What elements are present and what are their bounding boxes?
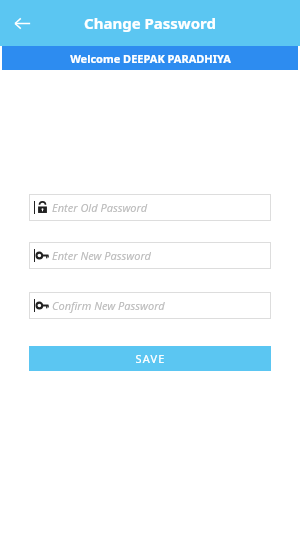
button[interactable]: Enter Old Password <box>29 194 271 221</box>
staticText: Welcome DEEPAK PARADHIYA <box>70 51 231 66</box>
button[interactable]: Enter New Password <box>29 242 271 269</box>
staticText: Enter New Password <box>52 248 151 263</box>
staticText: Enter Old Password <box>52 200 148 215</box>
button[interactable]: SAVE <box>29 346 271 371</box>
staticText: Confirm New Password <box>52 298 165 313</box>
button[interactable]: Confirm New Password <box>29 292 271 319</box>
staticText: Change Password <box>0 13 300 33</box>
staticText: SAVE <box>135 351 166 366</box>
button[interactable]: Back <box>6 7 38 39</box>
